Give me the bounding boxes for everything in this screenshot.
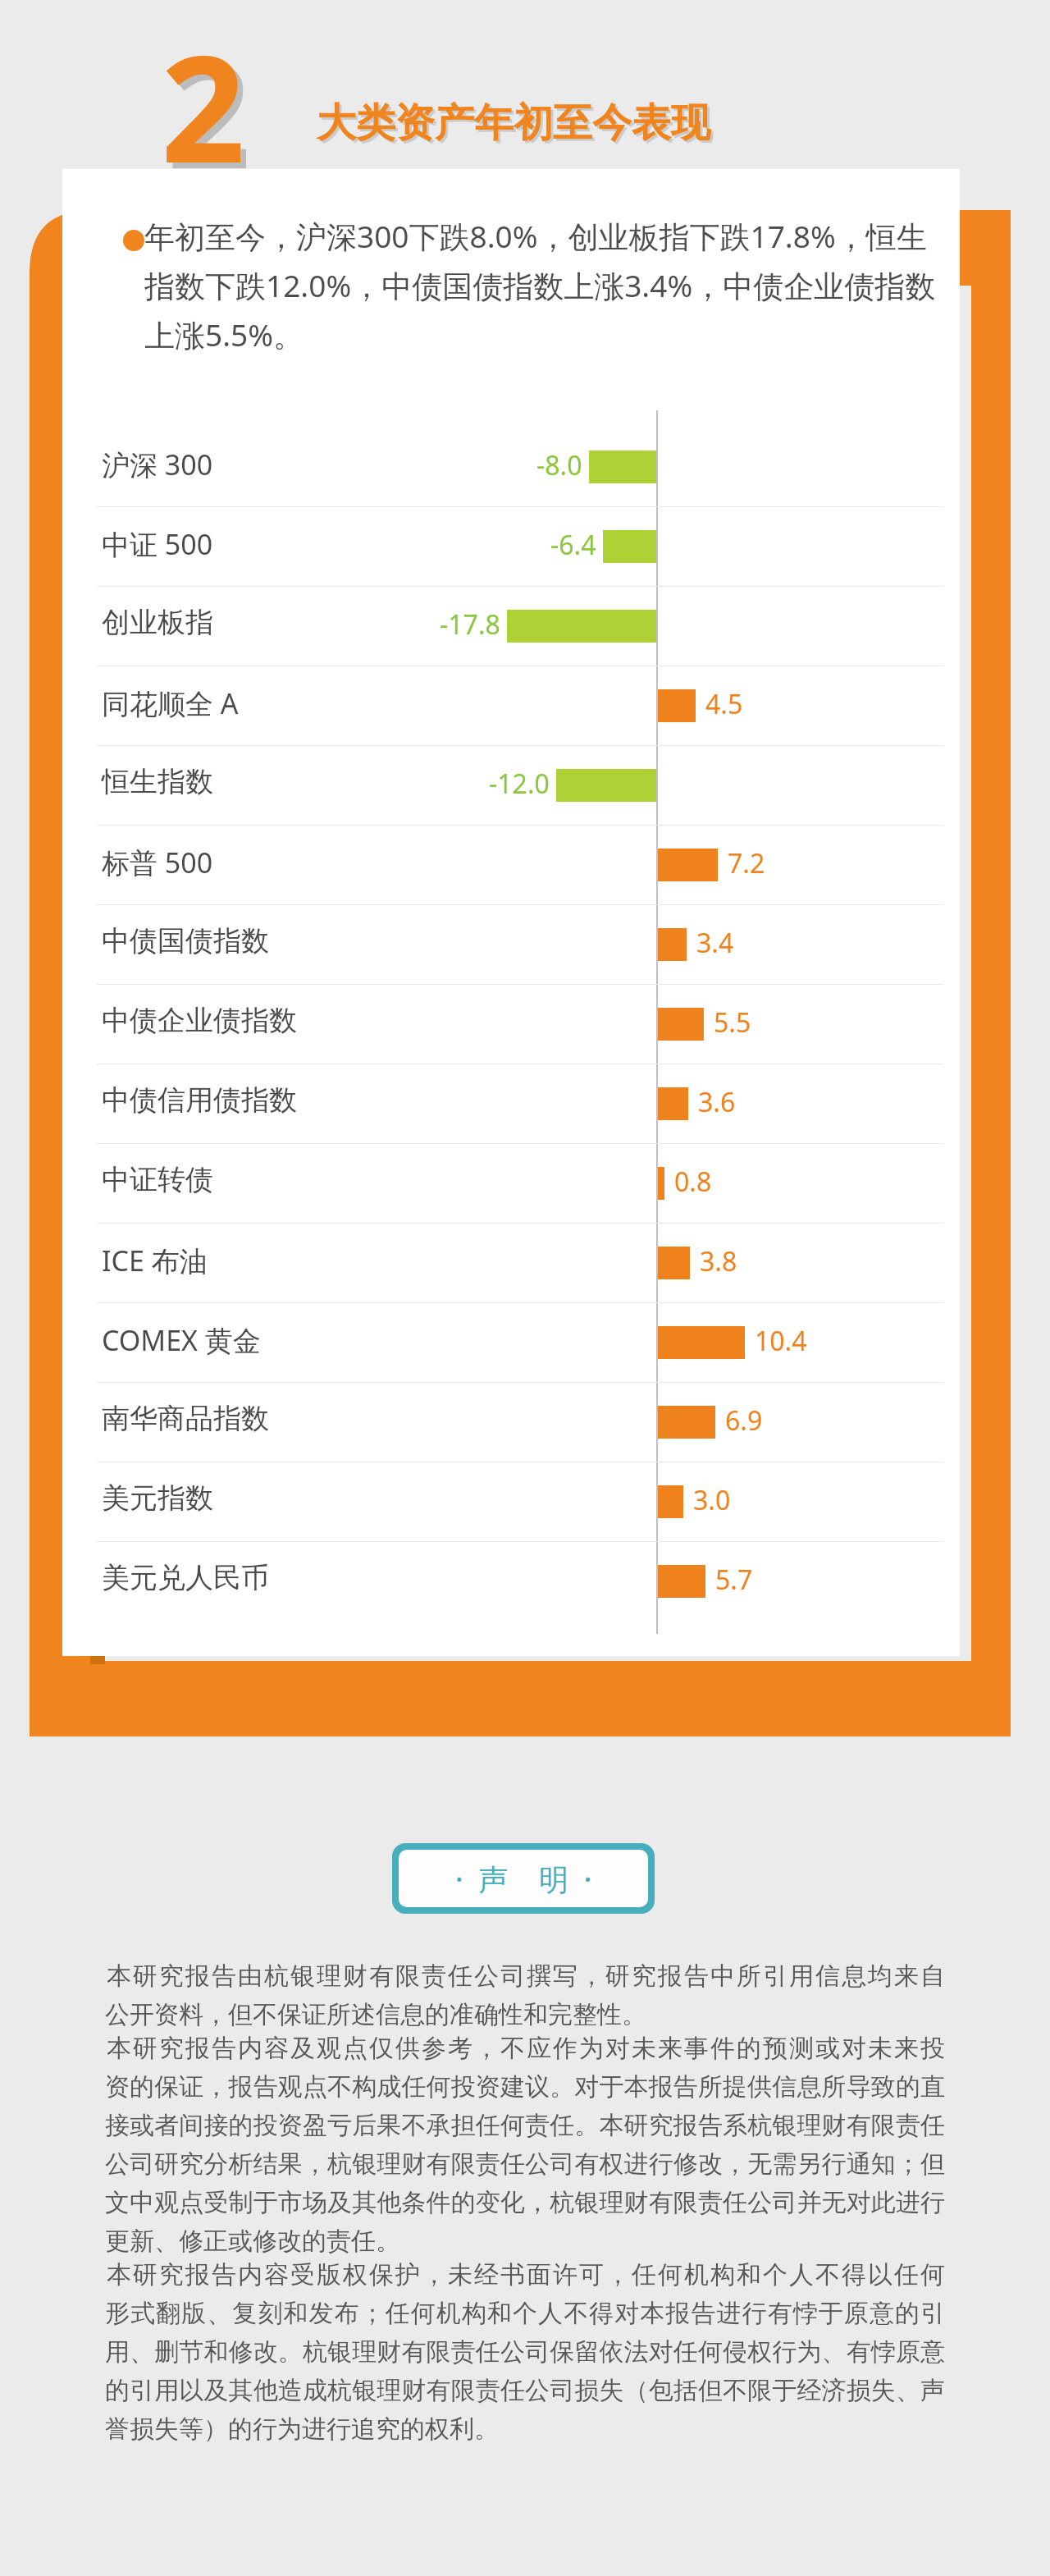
staticText: 年初至今，沪深300下跌8.0%，创业板指下跌17.8%，恒生指数下跌12.0%…	[144, 215, 943, 355]
staticText: 本研究报告内容受版权保护，未经书面许可，任何机构和个人不得以任何形式翻版、复刻和…	[105, 2257, 945, 2445]
staticText: 中债企业债指数	[102, 1003, 297, 1038]
button[interactable]: · 声 明 ·	[392, 1843, 655, 1914]
staticText: 2	[161, 5, 245, 206]
staticText: -8.0	[536, 447, 582, 483]
button[interactable]: 创业板指	[102, 605, 397, 649]
staticText: -17.8	[440, 606, 500, 643]
staticText: 同花顺全 A	[102, 684, 239, 722]
staticText: 大类资产年初至今表现	[319, 101, 713, 150]
staticText: COMEX 黄金	[102, 1321, 261, 1359]
button[interactable]: 美元兑人民币	[102, 1560, 397, 1604]
staticText: 中证转债	[102, 1162, 213, 1197]
staticText: 7.2	[728, 845, 765, 881]
staticText: 3.0	[693, 1482, 731, 1518]
staticText: · 声 明 ·	[455, 1859, 592, 1899]
staticText: 中债信用债指数	[102, 1082, 297, 1118]
button[interactable]: 中证转债	[102, 1162, 397, 1206]
button[interactable]: 中债信用债指数	[102, 1082, 397, 1127]
staticText: 4.5	[705, 686, 743, 722]
button[interactable]: COMEX 黄金	[102, 1321, 397, 1366]
staticText: 本研究报告内容及观点仅供参考，不应作为对未来事件的预测或对未来投资的保证，报告观…	[105, 2030, 945, 2257]
button[interactable]: 沪深 300	[102, 446, 397, 490]
staticText: 10.4	[755, 1323, 807, 1359]
staticText: 0.8	[674, 1164, 712, 1200]
staticText: 6.9	[725, 1402, 763, 1439]
button[interactable]: 南华商品指数	[102, 1401, 397, 1445]
button[interactable]: 恒生指数	[102, 764, 397, 808]
button[interactable]: 中债企业债指数	[102, 1003, 397, 1047]
staticText: -6.4	[550, 527, 596, 563]
button[interactable]: 美元指数	[102, 1480, 397, 1525]
staticText: 大类资产年初至今表现	[317, 98, 710, 148]
button[interactable]: 中证 500	[102, 525, 397, 570]
staticText: 中债国债指数	[102, 923, 269, 959]
staticText: 中证 500	[102, 525, 213, 563]
staticText: 美元指数	[102, 1480, 213, 1516]
staticText: 3.6	[698, 1084, 736, 1120]
button[interactable]: 标普 500	[102, 844, 397, 888]
staticText: 标普 500	[102, 844, 213, 881]
button[interactable]: 同花顺全 A	[102, 684, 397, 729]
button[interactable]: ICE 布油	[102, 1242, 397, 1286]
staticText: 美元兑人民币	[102, 1560, 269, 1595]
staticText: -12.0	[489, 766, 550, 802]
button[interactable]: 中债国债指数	[102, 923, 397, 968]
staticText: 3.8	[700, 1243, 737, 1279]
staticText: 本研究报告由杭银理财有限责任公司撰写，研究报告中所引用信息均来自公开资料，但不保…	[105, 1958, 945, 2030]
staticText: 5.7	[715, 1562, 753, 1598]
staticText: 创业板指	[102, 605, 213, 640]
staticText: 南华商品指数	[102, 1401, 269, 1436]
staticText: 5.5	[714, 1004, 751, 1041]
staticText: 恒生指数	[102, 764, 213, 799]
staticText: 沪深 300	[102, 446, 213, 483]
staticText: 2	[167, 11, 251, 212]
staticText: ICE 布油	[102, 1242, 208, 1279]
staticText: 3.4	[696, 925, 734, 961]
